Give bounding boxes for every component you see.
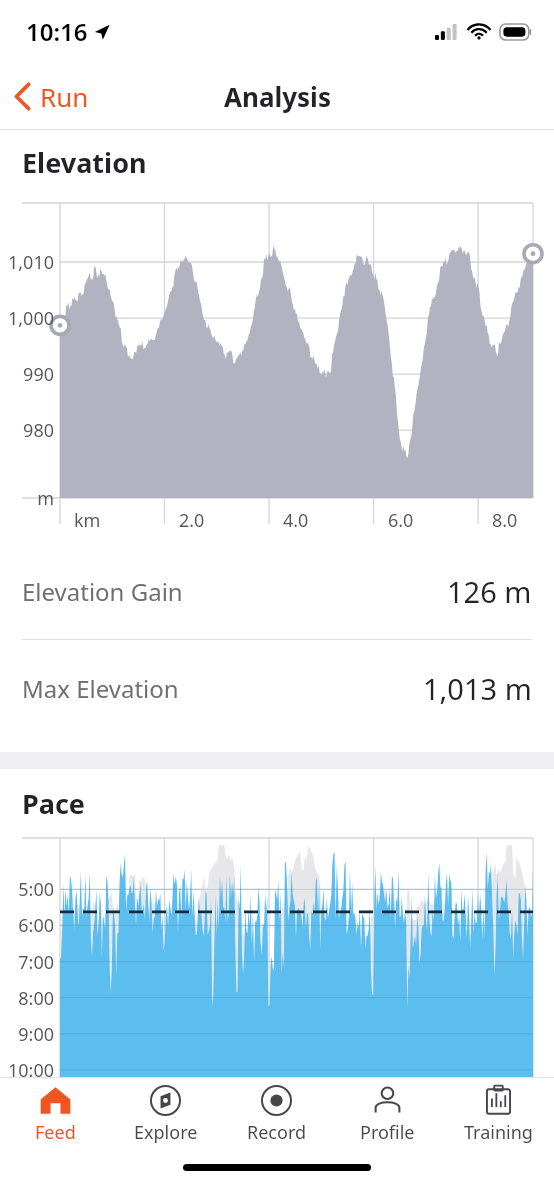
- staticText: 4.0: [283, 508, 309, 533]
- staticText: 1,013 m: [423, 669, 532, 708]
- staticText: Feed: [35, 1120, 76, 1145]
- staticText: Run: [40, 79, 89, 114]
- staticText: m: [37, 486, 54, 511]
- staticText: 980: [23, 418, 54, 443]
- button[interactable]: Max Elevation: [0, 640, 554, 736]
- staticText: Elevation Gain: [22, 575, 183, 608]
- button[interactable]: Explore: [110, 1078, 221, 1150]
- staticText: 2.0: [179, 508, 205, 533]
- staticText: Training: [464, 1120, 533, 1145]
- staticText: Record: [247, 1120, 307, 1145]
- staticText: 1,000: [7, 306, 54, 331]
- button[interactable]: Training: [443, 1078, 554, 1150]
- staticText: 9:00: [18, 1022, 54, 1047]
- staticText: 5:00: [18, 877, 54, 902]
- staticText: 8:00: [18, 986, 54, 1011]
- staticText: 6.0: [388, 508, 414, 533]
- staticText: Elevation: [22, 144, 147, 181]
- button[interactable]: Record: [221, 1078, 332, 1150]
- staticText: 10:00: [7, 1058, 54, 1083]
- staticText: Max Elevation: [22, 672, 179, 705]
- button[interactable]: Feed: [0, 1078, 110, 1150]
- button[interactable]: Profile: [332, 1078, 443, 1150]
- staticText: Pace: [22, 785, 85, 822]
- button[interactable]: Run: [0, 69, 103, 124]
- staticText: 10:16: [26, 15, 88, 48]
- staticText: 8.0: [492, 508, 518, 533]
- staticText: Profile: [360, 1120, 415, 1145]
- staticText: Analysis: [224, 79, 331, 114]
- staticText: 126 m: [447, 572, 532, 611]
- button[interactable]: Elevation Gain: [0, 543, 554, 639]
- staticText: km: [74, 508, 101, 533]
- staticText: 990: [23, 362, 54, 387]
- staticText: Explore: [134, 1120, 198, 1145]
- staticText: 6:00: [18, 913, 54, 938]
- staticText: 1,010: [7, 250, 54, 275]
- staticText: 7:00: [18, 950, 54, 975]
